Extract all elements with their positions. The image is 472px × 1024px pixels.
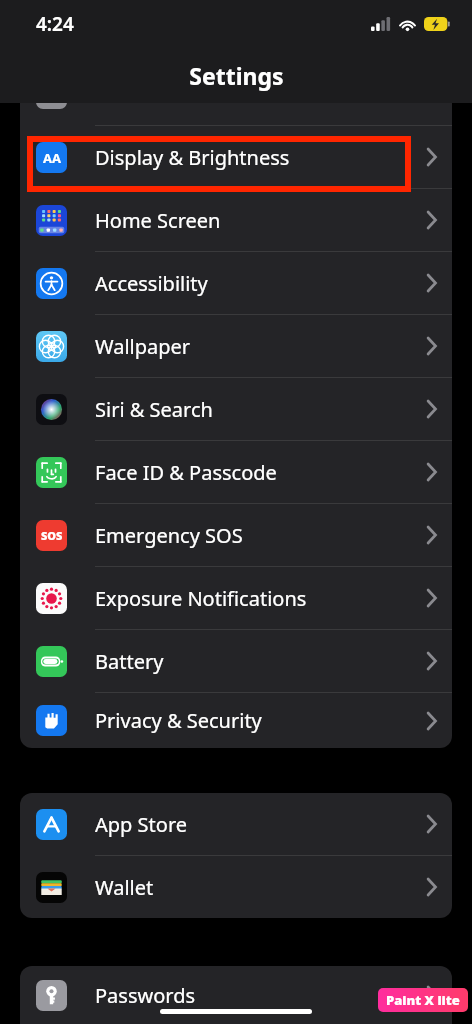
button[interactable]: Exposure Notifications — [20, 567, 452, 629]
staticText: SOS — [41, 528, 63, 543]
button[interactable]: SOS — [20, 504, 452, 566]
staticText: Paint X lite — [386, 991, 460, 1009]
staticText: Emergency SOS — [95, 522, 427, 549]
staticText: Passwords — [95, 982, 427, 1009]
staticText: Privacy & Security — [95, 707, 427, 734]
staticText: Siri & Search — [95, 396, 427, 423]
staticText: Battery — [95, 648, 427, 675]
staticText: Home Screen — [95, 207, 427, 234]
button[interactable]: Siri & Search — [20, 378, 452, 440]
staticText: AA — [43, 149, 61, 167]
staticText: Wallet — [95, 874, 427, 901]
staticText: Accessibility — [95, 270, 427, 297]
staticText: Exposure Notifications — [95, 585, 427, 612]
button[interactable]: App Store — [20, 793, 452, 855]
button[interactable]: Wallpaper — [20, 315, 452, 377]
staticText: Face ID & Passcode — [95, 459, 427, 486]
button[interactable]: Privacy & Security — [20, 693, 452, 748]
button[interactable]: Home Screen — [20, 189, 452, 251]
staticText: Display & Brightness — [95, 144, 427, 171]
button[interactable]: Battery — [20, 630, 452, 692]
staticText: App Store — [95, 811, 427, 838]
staticText: Wallpaper — [95, 333, 427, 360]
button[interactable]: Passwords — [20, 966, 452, 1024]
staticText: Settings — [189, 60, 284, 91]
button[interactable]: Face ID & Passcode — [20, 441, 452, 503]
button[interactable]: Wallet — [20, 856, 452, 918]
staticText: 4:24 — [36, 11, 74, 37]
button[interactable]: Accessibility — [20, 252, 452, 314]
button[interactable]: AA — [20, 126, 452, 188]
